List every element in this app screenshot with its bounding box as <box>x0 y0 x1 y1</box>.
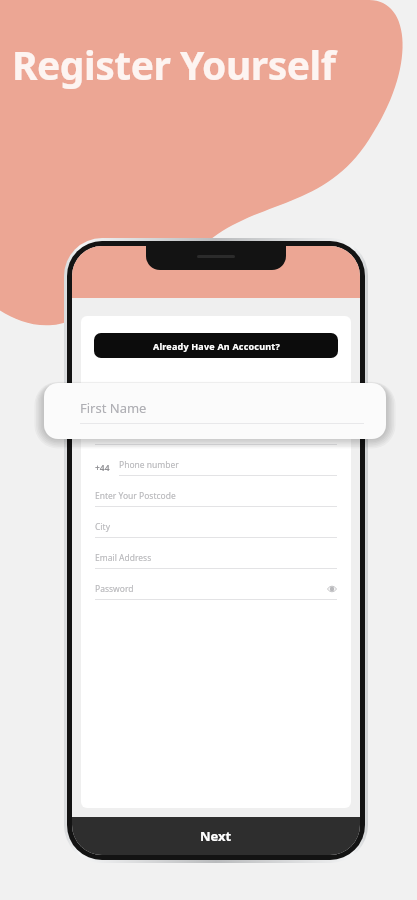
other: Show password <box>327 584 337 594</box>
staticText: Register Yourself <box>12 38 405 91</box>
staticText: Phone number <box>119 459 179 471</box>
button[interactable]: Last Name <box>95 428 337 445</box>
staticText: +44 <box>95 462 110 474</box>
button[interactable]: First Name <box>44 383 386 439</box>
staticText: Password <box>95 583 327 595</box>
button[interactable]: Next <box>72 817 360 855</box>
staticText: Already Have An Accocunt? <box>153 340 280 352</box>
staticText: City <box>95 521 337 533</box>
button[interactable]: +44 <box>95 459 337 476</box>
button[interactable]: Email Address <box>95 552 337 569</box>
staticText: Last Name <box>95 428 337 440</box>
staticText: Next <box>200 827 232 845</box>
staticText: Email Address <box>95 552 337 564</box>
button[interactable]: Enter Your Postcode <box>95 490 337 507</box>
button[interactable]: City <box>95 521 337 538</box>
staticText: Enter Your Postcode <box>95 490 337 502</box>
staticText: First Name <box>80 399 147 417</box>
button[interactable]: Already Have An Accocunt? <box>94 333 338 358</box>
button[interactable]: Password <box>95 583 337 600</box>
